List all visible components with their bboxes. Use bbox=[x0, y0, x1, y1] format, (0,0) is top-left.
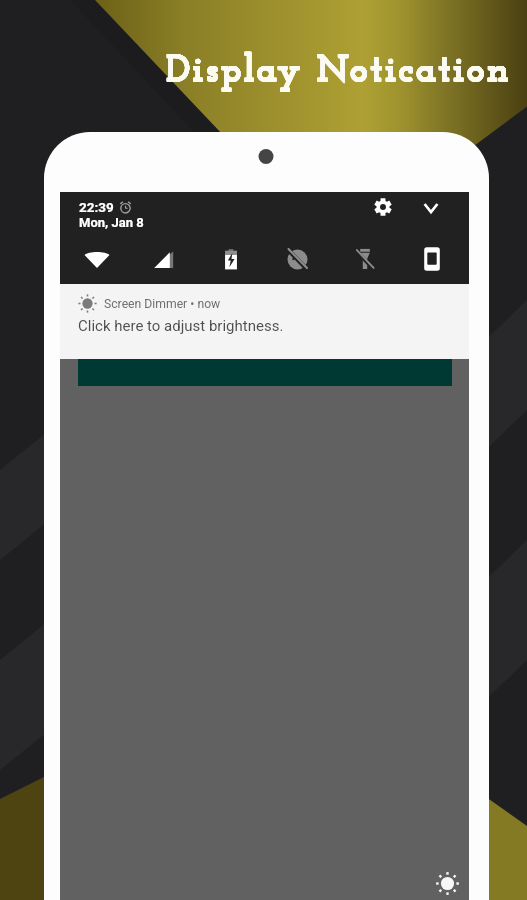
button[interactable]: Wi-Fi bbox=[64, 233, 130, 285]
staticText: Display Notication bbox=[166, 53, 512, 91]
staticText: 22:39 bbox=[79, 199, 114, 215]
staticText: Display Notication bbox=[165, 52, 511, 90]
button[interactable]: Brightness bbox=[425, 861, 469, 900]
button[interactable]: Expand bbox=[417, 194, 445, 222]
staticText: Mon, Jan 8 bbox=[79, 215, 144, 230]
staticText: Display Notication bbox=[165, 53, 511, 91]
button[interactable]: 22:39 bbox=[76, 196, 147, 233]
button[interactable]: Cast screen bbox=[398, 233, 465, 285]
button[interactable]: Battery saver bbox=[197, 233, 264, 285]
staticText: Display Notication bbox=[166, 53, 512, 91]
staticText: Display Notication bbox=[166, 52, 512, 90]
staticText: Display Notication bbox=[165, 52, 511, 90]
button[interactable]: Auto-rotate off bbox=[264, 233, 331, 285]
staticText: Display Notication bbox=[166, 52, 512, 90]
button[interactable]: Screen Dimmer • now bbox=[60, 284, 469, 359]
button[interactable]: Settings bbox=[369, 193, 397, 221]
staticText: Display Notication bbox=[166, 52, 512, 90]
button[interactable]: Flashlight off bbox=[331, 233, 398, 285]
staticText: Display Notication bbox=[166, 52, 512, 90]
button[interactable]: Mobile data bbox=[130, 233, 197, 285]
staticText: Screen Dimmer • now bbox=[104, 297, 221, 311]
staticText: Click here to adjust brightness. bbox=[78, 317, 284, 335]
